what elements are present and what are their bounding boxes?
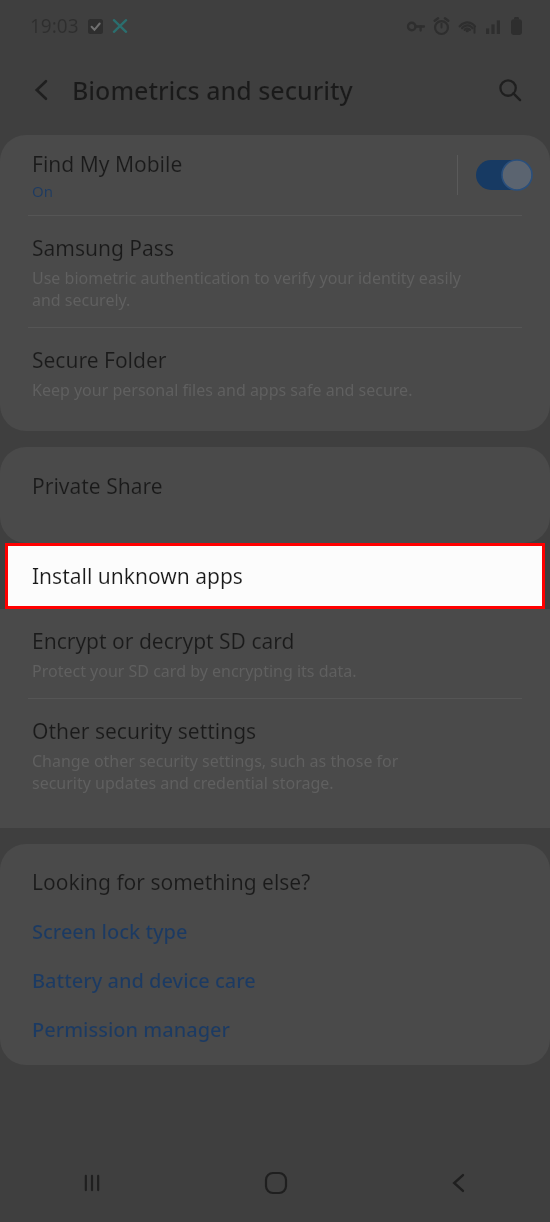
button[interactable]: Find My Mobile	[0, 135, 550, 215]
button[interactable]: Permission manager	[32, 1016, 230, 1043]
staticText: Find My Mobile	[32, 150, 183, 179]
button[interactable]: Private Share	[0, 447, 550, 525]
button[interactable]: Other security settings	[0, 699, 550, 810]
staticText: Biometrics and security	[72, 73, 353, 107]
staticText: 19:03	[30, 13, 79, 39]
staticText: On	[32, 181, 53, 201]
button[interactable]: Encrypt or decrypt SD card	[0, 609, 550, 698]
staticText: Use biometric authentication to verify y…	[32, 267, 461, 311]
staticText: Change other security settings, such as …	[32, 750, 399, 794]
staticText: Permission manager	[32, 1016, 230, 1043]
button[interactable]: Secure Folder	[0, 328, 550, 417]
staticText: Encrypt or decrypt SD card	[32, 627, 295, 656]
button[interactable]: Install unknown apps	[5, 543, 545, 609]
staticText: Install unknown apps	[32, 562, 243, 591]
staticText: Protect your SD card by encrypting its d…	[32, 660, 357, 682]
staticText: Samsung Pass	[32, 234, 174, 263]
staticText: Private Share	[32, 472, 163, 501]
staticText: Keep your personal files and apps safe a…	[32, 379, 413, 401]
button[interactable]: Battery and device care	[32, 967, 256, 994]
button[interactable]: Back	[14, 62, 70, 118]
staticText: Battery and device care	[32, 967, 256, 994]
staticText: Other security settings	[32, 717, 257, 746]
button[interactable]: Samsung Pass	[0, 216, 550, 327]
staticText: Screen lock type	[32, 918, 188, 945]
staticText: Looking for something else?	[32, 868, 311, 897]
button[interactable]: Screen lock type	[32, 918, 188, 945]
button[interactable]: Home	[184, 1144, 367, 1222]
staticText: Secure Folder	[32, 346, 167, 375]
button[interactable]: Search	[482, 62, 538, 118]
